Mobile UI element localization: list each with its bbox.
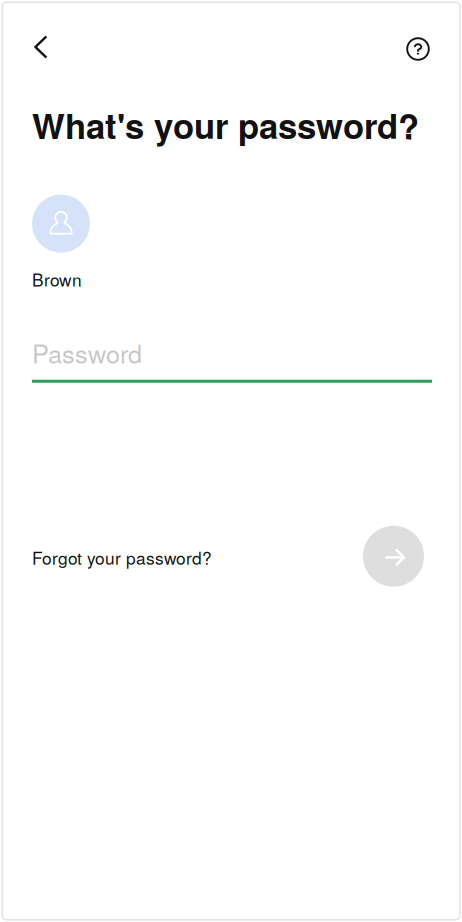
staticText: What's your password? — [32, 100, 419, 150]
button[interactable]: Continue — [363, 526, 424, 587]
staticText: Brown — [32, 267, 82, 291]
button[interactable]: Back — [18, 25, 62, 69]
button[interactable]: Help — [395, 25, 439, 69]
button[interactable]: Forgot your password? — [32, 534, 212, 579]
staticText: Password — [32, 334, 142, 371]
staticText: Forgot your password? — [32, 545, 212, 570]
button[interactable]: Password — [32, 334, 432, 383]
